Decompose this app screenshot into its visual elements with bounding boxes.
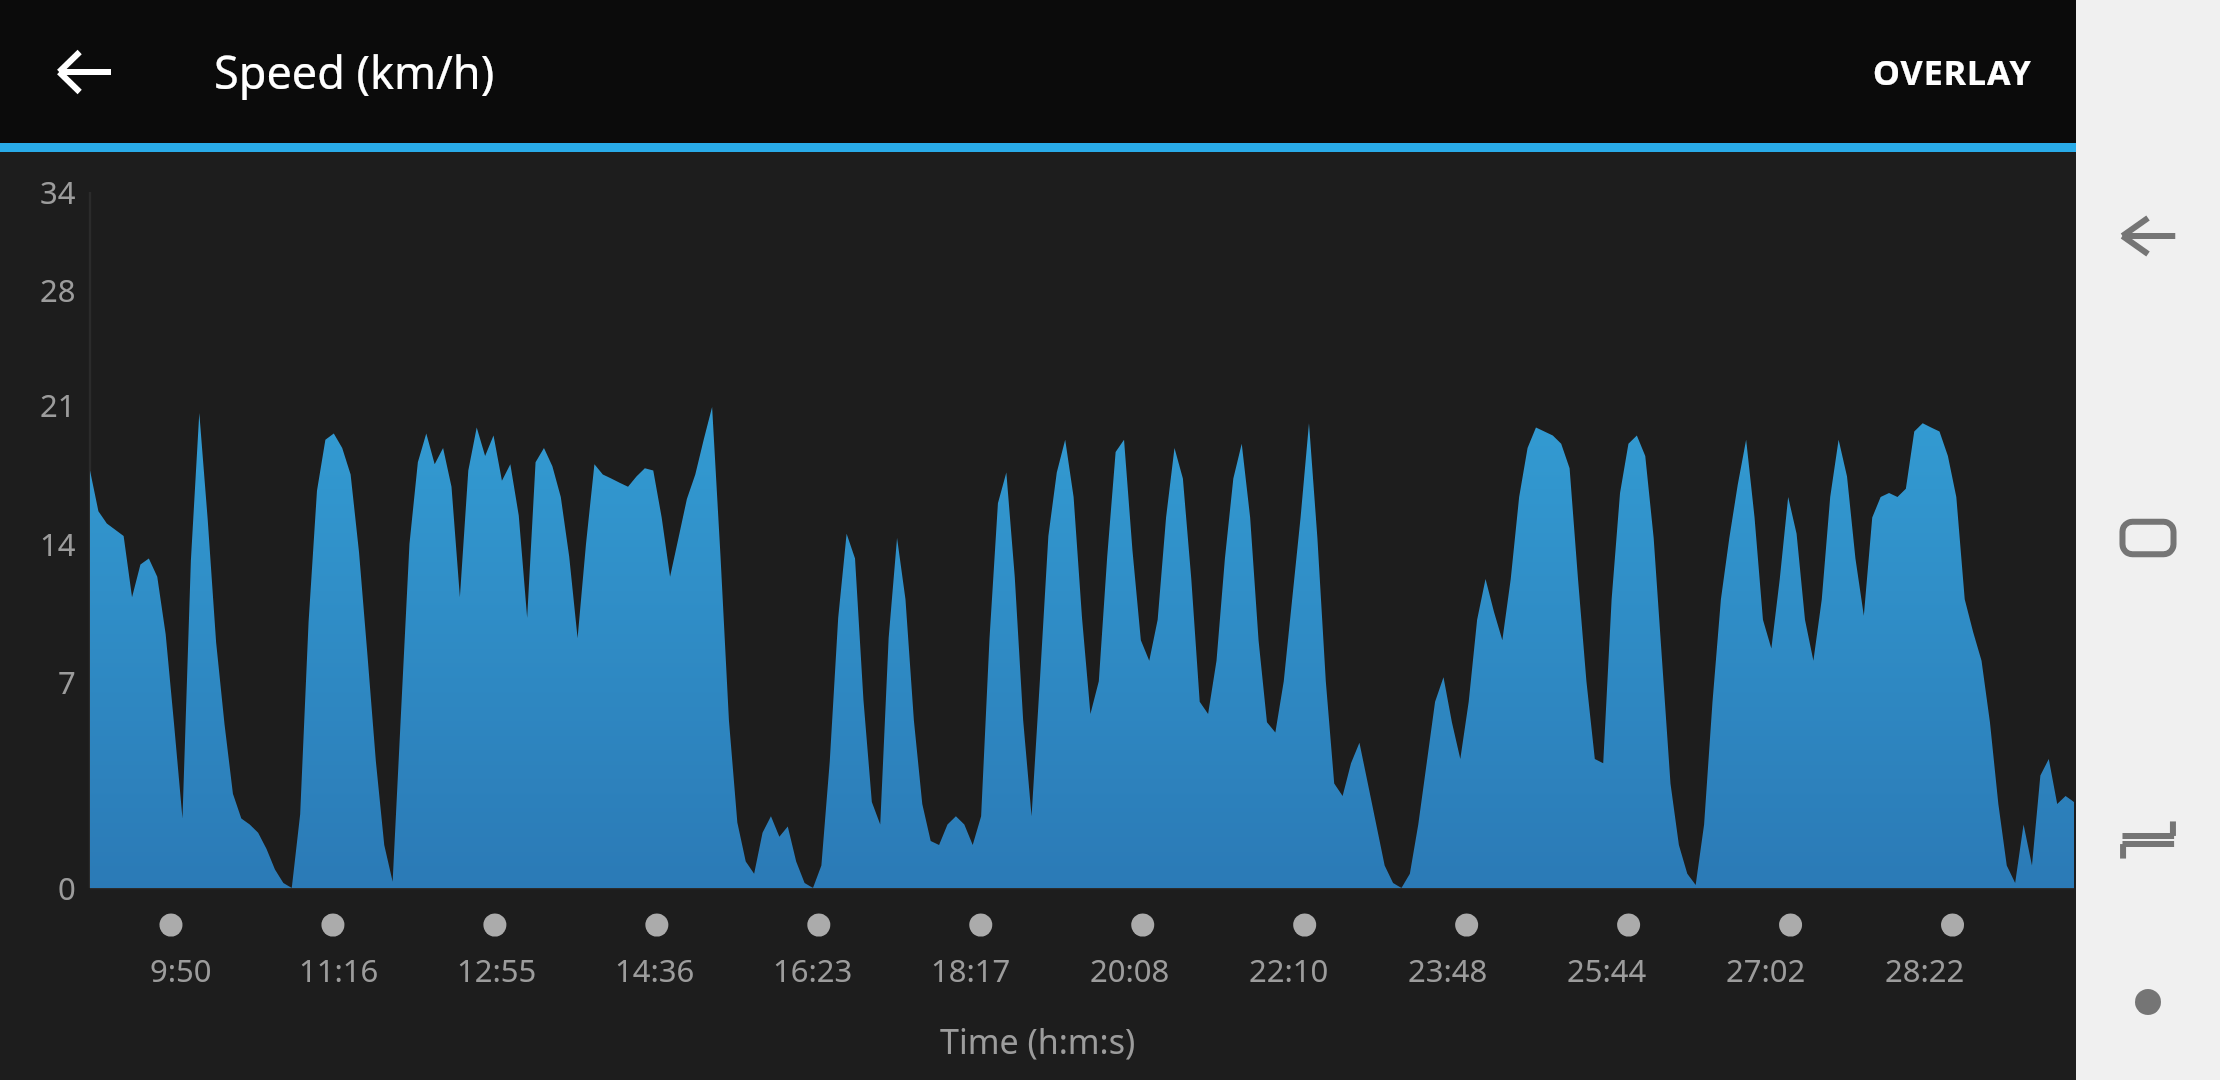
staticText: 9:50: [150, 949, 212, 991]
staticText: 18:17: [931, 949, 1011, 991]
staticText: 22:10: [1249, 949, 1329, 991]
staticText: 11:16: [299, 949, 379, 991]
staticText: 12:55: [457, 949, 537, 991]
button[interactable]: More options: [2100, 954, 2196, 1050]
staticText: 14: [40, 523, 76, 565]
staticText: 20:08: [1090, 949, 1170, 991]
staticText: 28:22: [1885, 949, 1965, 991]
staticText: 23:48: [1408, 949, 1488, 991]
staticText: 7: [58, 661, 76, 703]
staticText: 14:36: [615, 949, 695, 991]
staticText: Speed (km/h): [214, 41, 495, 102]
button[interactable]: Switch apps: [2094, 786, 2202, 894]
staticText: 0: [58, 867, 76, 909]
staticText: OVERLAY: [1873, 49, 2032, 95]
staticText: 25:44: [1567, 949, 1647, 991]
button[interactable]: Back: [2094, 182, 2202, 290]
staticText: 21: [40, 384, 76, 426]
staticText: 34: [40, 171, 76, 213]
button[interactable]: OVERLAY: [1847, 23, 2058, 121]
button[interactable]: Navigate up: [38, 26, 130, 118]
staticText: Time (h:m:s): [940, 1018, 1136, 1064]
staticText: 16:23: [773, 949, 853, 991]
button[interactable]: Recent apps: [2094, 484, 2202, 592]
staticText: 28: [40, 269, 76, 311]
staticText: 27:02: [1726, 949, 1806, 991]
